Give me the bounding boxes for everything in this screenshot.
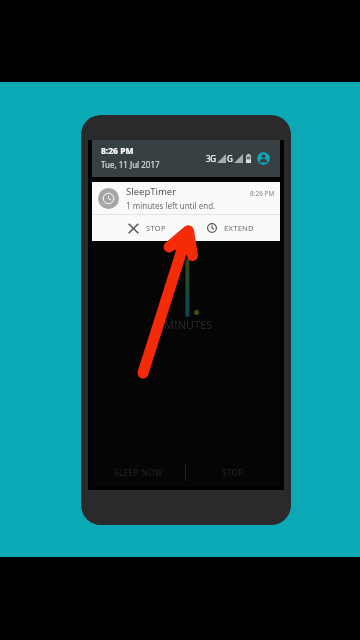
- staticText: Tue, 11 Jul 2017: [101, 159, 160, 170]
- other: Annotation arrow: [0, 0, 360, 640]
- button[interactable]: EXTEND: [186, 215, 280, 241]
- staticText: EXTEND: [224, 223, 254, 233]
- button[interactable]: Account: [257, 152, 270, 165]
- staticText: STOP: [146, 223, 166, 233]
- staticText: SLEEP NOW: [114, 467, 163, 478]
- staticText: 8:26 PM: [250, 189, 275, 198]
- staticText: 3G: [206, 153, 216, 164]
- button[interactable]: STOP: [186, 458, 280, 486]
- staticText: STOP: [222, 467, 244, 478]
- staticText: SleepTimer: [126, 185, 177, 198]
- button[interactable]: SleepTimer: [92, 182, 280, 214]
- staticText: G: [227, 153, 233, 164]
- button[interactable]: STOP: [92, 215, 186, 241]
- staticText: 8:26 PM: [101, 145, 134, 157]
- button[interactable]: SLEEP NOW: [92, 458, 185, 486]
- staticText: 1 minutes left until end.: [126, 200, 216, 211]
- staticText: MINUTES: [164, 317, 213, 332]
